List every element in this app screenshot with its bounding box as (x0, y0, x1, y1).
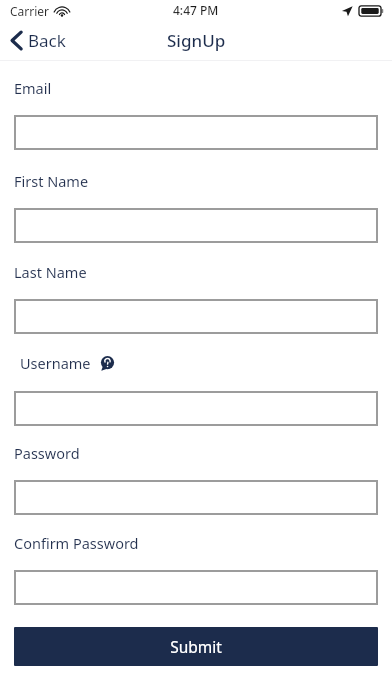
button[interactable] (14, 299, 378, 334)
staticText: Password (14, 443, 80, 463)
button[interactable] (14, 208, 378, 243)
staticText: Confirm Password (14, 533, 139, 553)
staticText: First Name (14, 171, 89, 191)
button[interactable]: Username help (100, 356, 115, 371)
staticText: Last Name (14, 262, 87, 282)
staticText: Carrier (10, 3, 50, 19)
button[interactable] (14, 480, 378, 515)
button[interactable] (14, 115, 378, 150)
staticText: Username (20, 353, 91, 373)
button[interactable]: Back (0, 25, 76, 56)
button[interactable]: Submit (14, 627, 378, 666)
staticText: Email (14, 78, 52, 98)
staticText: 4:47 PM (173, 2, 219, 18)
staticText: SignUp (167, 29, 226, 52)
staticText: Back (28, 29, 66, 52)
button[interactable] (14, 570, 378, 605)
staticText: Submit (170, 636, 222, 657)
button[interactable] (14, 391, 378, 426)
